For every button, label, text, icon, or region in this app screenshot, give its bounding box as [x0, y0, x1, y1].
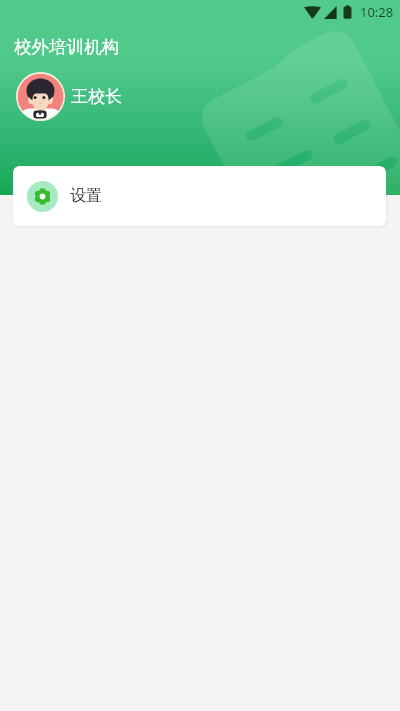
button[interactable]: 设置 — [13, 166, 386, 226]
staticText: 10:28 — [360, 3, 394, 21]
staticText: 校外培训机构 — [14, 36, 119, 58]
staticText: 王校长 — [71, 86, 122, 107]
staticText: 设置 — [70, 186, 102, 206]
